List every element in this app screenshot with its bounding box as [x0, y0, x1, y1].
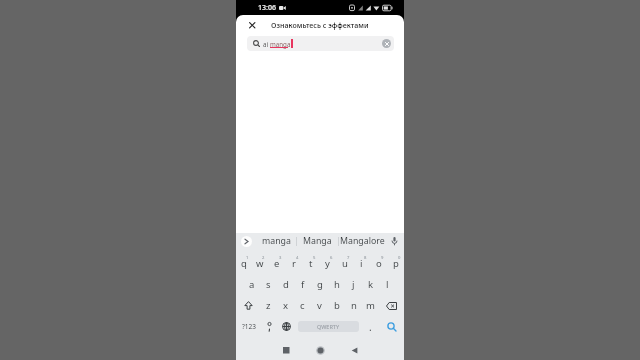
button[interactable]: v — [311, 295, 328, 316]
staticText: Mangalore — [340, 235, 385, 247]
button[interactable]: ?123 — [236, 316, 261, 337]
staticText: m — [366, 299, 375, 312]
staticText: 1 — [246, 255, 249, 261]
staticText: 0 — [398, 255, 401, 261]
staticText: manga — [262, 235, 291, 247]
staticText: 8 — [364, 255, 367, 261]
button[interactable]: f — [294, 274, 311, 295]
button[interactable]: g — [311, 274, 328, 295]
button[interactable] — [388, 235, 400, 247]
staticText: o — [376, 257, 382, 270]
staticText: 5 — [313, 255, 316, 261]
staticText: ai — [263, 40, 270, 48]
button[interactable]: s — [260, 274, 277, 295]
button[interactable]: u — [336, 253, 353, 274]
button[interactable] — [241, 236, 252, 247]
button[interactable]: . — [362, 316, 379, 337]
button[interactable] — [246, 19, 259, 32]
button[interactable]: t — [302, 253, 319, 274]
staticText: l — [386, 278, 389, 291]
staticText: 4 — [296, 255, 299, 261]
button[interactable]: e — [268, 253, 285, 274]
staticText: v — [317, 299, 322, 312]
staticText: j — [352, 278, 355, 291]
button[interactable]: i — [353, 253, 370, 274]
button[interactable]: z — [260, 295, 277, 316]
staticText: n — [351, 299, 357, 312]
staticText: p — [393, 257, 399, 270]
button[interactable]: m — [362, 295, 379, 316]
staticText: q — [241, 257, 247, 270]
staticText: 2 — [262, 255, 265, 261]
button[interactable]: Manga — [297, 233, 338, 249]
staticText: i — [360, 257, 363, 270]
button[interactable] — [382, 39, 391, 48]
button[interactable]: q — [236, 253, 252, 274]
staticText: x — [283, 299, 289, 312]
button[interactable]: h — [328, 274, 345, 295]
staticText: 3 — [279, 255, 282, 261]
staticText: 7 — [347, 255, 350, 261]
button[interactable] — [278, 342, 294, 358]
staticText: w — [256, 257, 264, 270]
button[interactable]: p — [387, 253, 404, 274]
button[interactable]: j — [345, 274, 362, 295]
button[interactable]: w — [252, 253, 268, 274]
button[interactable]: b — [328, 295, 345, 316]
staticText: Manga — [303, 235, 332, 247]
staticText: . — [369, 320, 372, 334]
staticText: 9 — [381, 255, 384, 261]
staticText: k — [368, 278, 374, 291]
button[interactable] — [278, 316, 295, 337]
button[interactable]: d — [277, 274, 294, 295]
staticText: c — [300, 299, 305, 312]
staticText: b — [334, 299, 340, 312]
staticText: a — [249, 278, 255, 291]
staticText: manga — [270, 40, 291, 48]
button[interactable]: x — [277, 295, 294, 316]
staticText: t — [309, 257, 313, 270]
button[interactable] — [261, 316, 278, 337]
button[interactable] — [236, 295, 260, 316]
staticText: r — [292, 257, 296, 270]
staticText: 6 — [330, 255, 333, 261]
staticText: y — [325, 257, 330, 270]
button[interactable]: a — [244, 274, 260, 295]
staticText: z — [266, 299, 271, 312]
staticText: e — [274, 257, 280, 270]
staticText: g — [317, 278, 323, 291]
staticText: 13:06 — [258, 3, 276, 13]
button[interactable]: l — [379, 274, 396, 295]
staticText: u — [342, 257, 348, 270]
button[interactable]: k — [362, 274, 379, 295]
staticText: f — [301, 278, 305, 291]
staticText: QWERTY — [317, 323, 340, 330]
button[interactable] — [379, 316, 404, 337]
button[interactable]: c — [294, 295, 311, 316]
button[interactable]: n — [345, 295, 362, 316]
button[interactable] — [379, 295, 404, 316]
staticText: ?123 — [242, 322, 256, 331]
button[interactable]: QWERTY — [298, 321, 359, 332]
staticText: Ознакомьтесь с эффектами — [271, 21, 369, 31]
button[interactable]: Mangalore — [339, 233, 386, 249]
button[interactable]: manga — [256, 233, 296, 249]
staticText: h — [334, 278, 340, 291]
button[interactable]: o — [370, 253, 387, 274]
button[interactable]: y — [319, 253, 336, 274]
button[interactable]: ai — [247, 36, 394, 51]
button[interactable] — [346, 342, 362, 358]
staticText: d — [283, 278, 289, 291]
staticText: s — [266, 278, 271, 291]
button[interactable] — [312, 342, 328, 358]
button[interactable]: r — [285, 253, 302, 274]
